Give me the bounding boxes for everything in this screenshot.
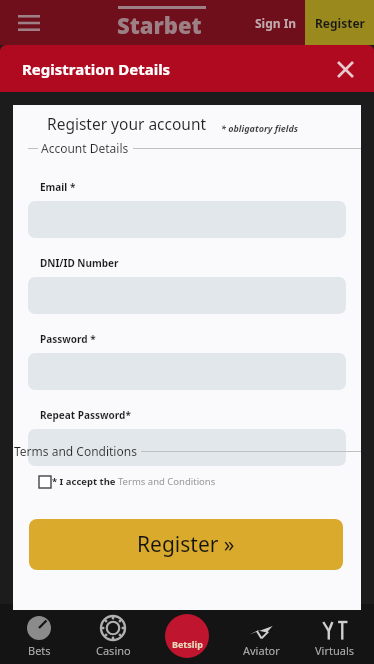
staticText: Aviator — [243, 643, 280, 658]
staticText: Sign In — [255, 15, 297, 31]
button[interactable]: Betslip — [152, 614, 222, 664]
staticText: Terms and Conditions — [14, 443, 137, 459]
button[interactable]: Register — [305, 0, 374, 45]
staticText: * I accept the — [52, 475, 118, 488]
button[interactable]: Virtuals — [300, 620, 370, 664]
button[interactable]: Menu — [12, 6, 46, 40]
staticText: Virtuals — [315, 643, 355, 658]
button[interactable]: * I accept the — [37, 471, 218, 492]
button[interactable]: Bets — [4, 616, 74, 664]
staticText: * obligatory fields — [221, 122, 299, 134]
staticText: Bets — [28, 643, 51, 658]
button[interactable]: Close — [330, 54, 360, 84]
staticText: Registration Details — [22, 59, 171, 79]
staticText: DNI/ID Number — [40, 256, 119, 270]
button[interactable]: Aviator — [226, 620, 296, 664]
staticText: Casino — [96, 643, 131, 658]
staticText: Register your account — [47, 113, 207, 134]
staticText: Email * — [40, 180, 76, 194]
staticText: Register » — [137, 530, 235, 559]
staticText: Terms and Conditions — [118, 475, 216, 488]
button[interactable]: Sign In — [247, 5, 305, 41]
staticText: Register — [315, 15, 365, 31]
button[interactable]: Register » — [29, 519, 343, 570]
staticText: Account Details — [41, 140, 129, 156]
button[interactable]: Casino — [78, 616, 148, 664]
button[interactable]: Starbet — [106, 2, 212, 44]
staticText: Betslip — [172, 638, 203, 650]
staticText: Repeat Password* — [40, 408, 131, 422]
staticText: Password * — [40, 332, 96, 346]
staticText: Starbet — [117, 10, 202, 40]
button[interactable] — [28, 429, 346, 466]
